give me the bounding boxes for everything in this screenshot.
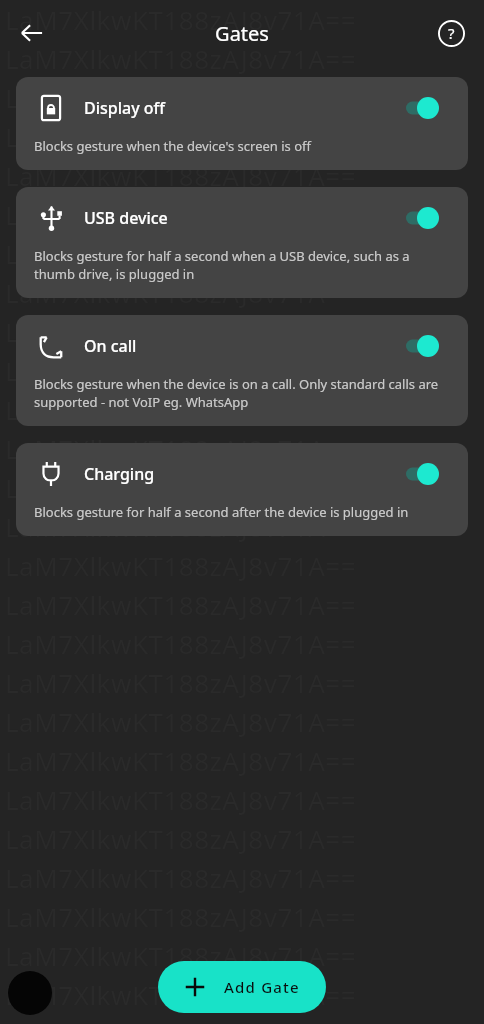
staticText: On call: [84, 335, 406, 357]
staticText: LaM7XlkwKT188zAJ8v71A==: [5, 392, 357, 427]
staticText: LaM7XlkwKT188zAJ8v71A==: [5, 431, 357, 466]
staticText: LaM7XlkwKT188zAJ8v71A==: [5, 509, 357, 544]
staticText: LaM7XlkwKT188zAJ8v71A==: [5, 470, 357, 505]
staticText: USB device: [84, 207, 406, 229]
staticText: LaM7XlkwKT188zAJ8v71A==: [5, 2, 357, 37]
button[interactable]: USB device: [16, 187, 468, 298]
staticText: LaM7XlkwKT188zAJ8v71A==: [5, 314, 357, 349]
staticText: Add Gate: [224, 977, 300, 997]
button[interactable]: Back: [8, 9, 56, 57]
button[interactable]: Help: [429, 11, 473, 55]
staticText: Blocks gesture when the device's screen …: [34, 137, 312, 155]
staticText: LaM7XlkwKT188zAJ8v71A==: [5, 236, 357, 271]
staticText: LaM7XlkwKT188zAJ8v71A==: [5, 977, 357, 1012]
staticText: Blocks gesture for half a second after t…: [34, 503, 409, 521]
staticText: LaM7XlkwKT188zAJ8v71A==: [5, 197, 357, 232]
button[interactable]: Add Gate: [158, 961, 326, 1013]
button[interactable]: Charging: [16, 443, 468, 536]
staticText: Charging: [84, 463, 406, 485]
button[interactable]: Display off: [16, 77, 468, 170]
staticText: Gates: [215, 20, 269, 47]
staticText: LaM7XlkwKT188zAJ8v71A==: [5, 275, 357, 310]
button[interactable]: Toggle gate: [406, 95, 450, 121]
button[interactable]: Toggle gate: [406, 461, 450, 487]
staticText: LaM7XlkwKT188zAJ8v71A==: [5, 119, 357, 154]
button[interactable]: Toggle gate: [406, 205, 450, 231]
staticText: ?: [448, 23, 455, 43]
staticText: Blocks gesture for half a second when a …: [34, 247, 450, 283]
staticText: LaM7XlkwKT188zAJ8v71A==: [5, 938, 357, 973]
staticText: Display off: [84, 97, 406, 119]
staticText: LaM7XlkwKT188zAJ8v71A==: [5, 353, 357, 388]
staticText: Blocks gesture when the device is on a c…: [34, 375, 450, 411]
staticText: LaM7XlkwKT188zAJ8v71A==: [5, 158, 357, 193]
button[interactable]: On call: [16, 315, 468, 426]
button[interactable]: Toggle gate: [406, 333, 450, 359]
staticText: LaM7XlkwKT188zAJ8v71A==: [5, 80, 357, 115]
